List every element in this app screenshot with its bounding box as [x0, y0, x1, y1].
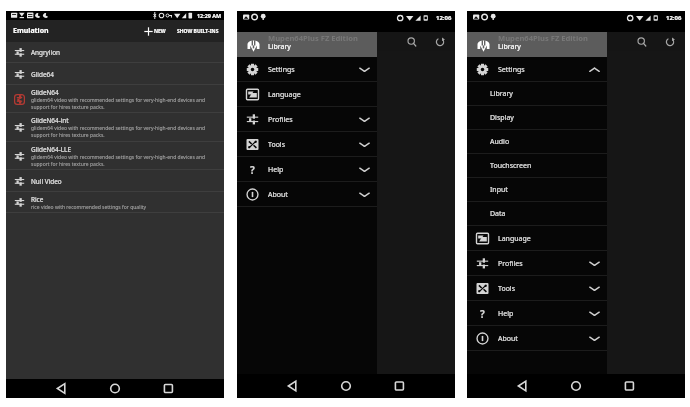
button[interactable]: Glide64 [6, 63, 224, 85]
staticText: glidem64 video with recommended settings… [31, 125, 206, 132]
staticText: Settings [268, 65, 295, 75]
button[interactable]: About [467, 326, 607, 351]
button[interactable]: Search [404, 34, 419, 49]
staticText: support for hires texture packs. [31, 161, 105, 168]
button[interactable]: Library [467, 82, 607, 106]
staticText: Settings [498, 65, 525, 75]
button[interactable]: ? [467, 301, 607, 326]
button[interactable]: Refresh [662, 34, 677, 49]
button[interactable]: SHOW BUILT-INS [175, 24, 221, 39]
button[interactable]: Settings [237, 57, 377, 82]
button[interactable]: GlideN64-int [6, 113, 224, 142]
staticText: glidem64 video with recommended settings… [31, 154, 206, 161]
staticText: Language [268, 90, 301, 100]
staticText: 12:06 [666, 14, 682, 22]
button[interactable]: Rice [6, 192, 224, 213]
button[interactable]: Language [237, 82, 377, 107]
staticText: Tools [268, 140, 286, 150]
staticText: 12:06 [436, 14, 452, 22]
staticText: Tools [498, 284, 516, 294]
staticText: About [268, 190, 288, 200]
staticText: Mupen64Plus FZ Edition [268, 33, 358, 43]
button[interactable]: NEW [142, 23, 168, 40]
staticText: Library [268, 42, 291, 52]
staticText: Language [498, 234, 531, 244]
button[interactable]: Null Video [6, 170, 224, 192]
staticText: Display [490, 113, 514, 123]
staticText: Mupen64Plus FZ Edition [262, 45, 348, 55]
staticText: GlideN64-LLE [31, 145, 71, 154]
staticText: ? [480, 307, 485, 320]
staticText: 12:29 AM [197, 12, 222, 19]
staticText: support for hires texture packs. [31, 132, 105, 139]
button[interactable]: Audio [467, 130, 607, 154]
button[interactable]: Profiles [237, 107, 377, 132]
staticText: SHOW BUILT-INS [177, 28, 219, 35]
staticText: Rice [31, 195, 44, 204]
staticText: Null Video [31, 177, 62, 186]
button[interactable]: Angrylion [6, 42, 224, 63]
staticText: Library [490, 89, 513, 99]
button[interactable]: Mupen64Plus FZ Edition [237, 32, 377, 57]
staticText: Touchscreen [490, 161, 532, 171]
button[interactable]: Tools [237, 132, 377, 157]
staticText: Emulation [13, 26, 49, 36]
staticText: glidem64 video with recommended settings… [31, 97, 206, 104]
button[interactable]: Language [467, 226, 607, 251]
button[interactable]: GlideN64 [6, 85, 224, 113]
button[interactable]: Data [467, 202, 607, 226]
button[interactable]: Mupen64Plus FZ Edition [467, 32, 607, 57]
staticText: ? [250, 163, 255, 176]
staticText: support for hires texture packs. [31, 104, 105, 111]
staticText: Profiles [268, 115, 293, 125]
staticText: About [498, 334, 518, 344]
staticText: Mupen64Plus FZ Edition [492, 45, 578, 55]
button[interactable]: Profiles [467, 251, 607, 276]
staticText: Help [268, 165, 284, 175]
staticText: Library [498, 42, 521, 52]
staticText: Glide64 [31, 70, 54, 79]
staticText: rice video with recommended settings for… [31, 204, 147, 211]
staticText: Data [490, 209, 506, 219]
button[interactable]: Tools [467, 276, 607, 301]
staticText: Mupen64Plus FZ Edition [498, 33, 588, 43]
staticText: GlideN64-int [31, 116, 69, 125]
button[interactable]: Search [634, 34, 649, 49]
button[interactable]: Refresh [432, 34, 447, 49]
staticText: Profiles [498, 259, 523, 269]
button[interactable]: Input [467, 178, 607, 202]
button[interactable]: About [237, 182, 377, 207]
staticText: Input [490, 185, 508, 195]
staticText: Angrylion [31, 48, 60, 57]
button[interactable]: Display [467, 106, 607, 130]
staticText: Help [498, 309, 514, 319]
button[interactable]: GlideN64-LLE [6, 142, 224, 170]
staticText: GlideN64 [31, 88, 59, 97]
button[interactable]: ? [237, 157, 377, 182]
staticText: Audio [490, 137, 510, 147]
staticText: NEW [154, 28, 166, 35]
button[interactable]: Settings [467, 57, 607, 82]
button[interactable]: Touchscreen [467, 154, 607, 178]
